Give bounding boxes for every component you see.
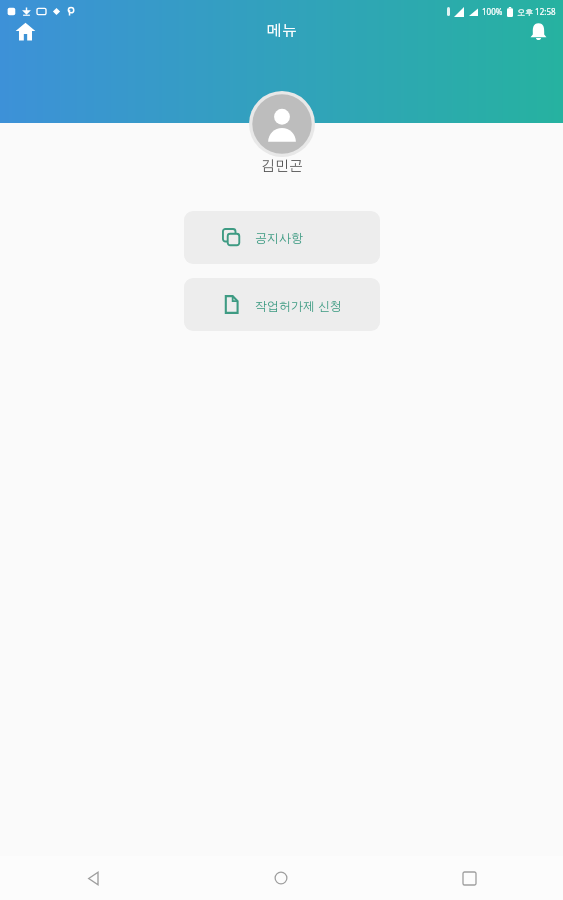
button[interactable]: Home: [0, 6, 50, 56]
button[interactable]: Home: [187, 856, 375, 900]
staticText: 김민곤: [261, 157, 303, 175]
staticText: 100%: [482, 6, 503, 17]
button[interactable]: Notifications: [513, 6, 563, 56]
staticText: 공지사항: [255, 230, 303, 245]
button[interactable]: Back: [0, 856, 187, 900]
button[interactable]: 작업허가제 신청: [184, 278, 380, 331]
button[interactable]: 공지사항: [184, 211, 380, 264]
staticText: 메뉴: [267, 21, 297, 40]
staticText: 오후 12:58: [517, 6, 556, 17]
staticText: 작업허가제 신청: [255, 297, 343, 313]
button[interactable]: Recents: [375, 856, 563, 900]
